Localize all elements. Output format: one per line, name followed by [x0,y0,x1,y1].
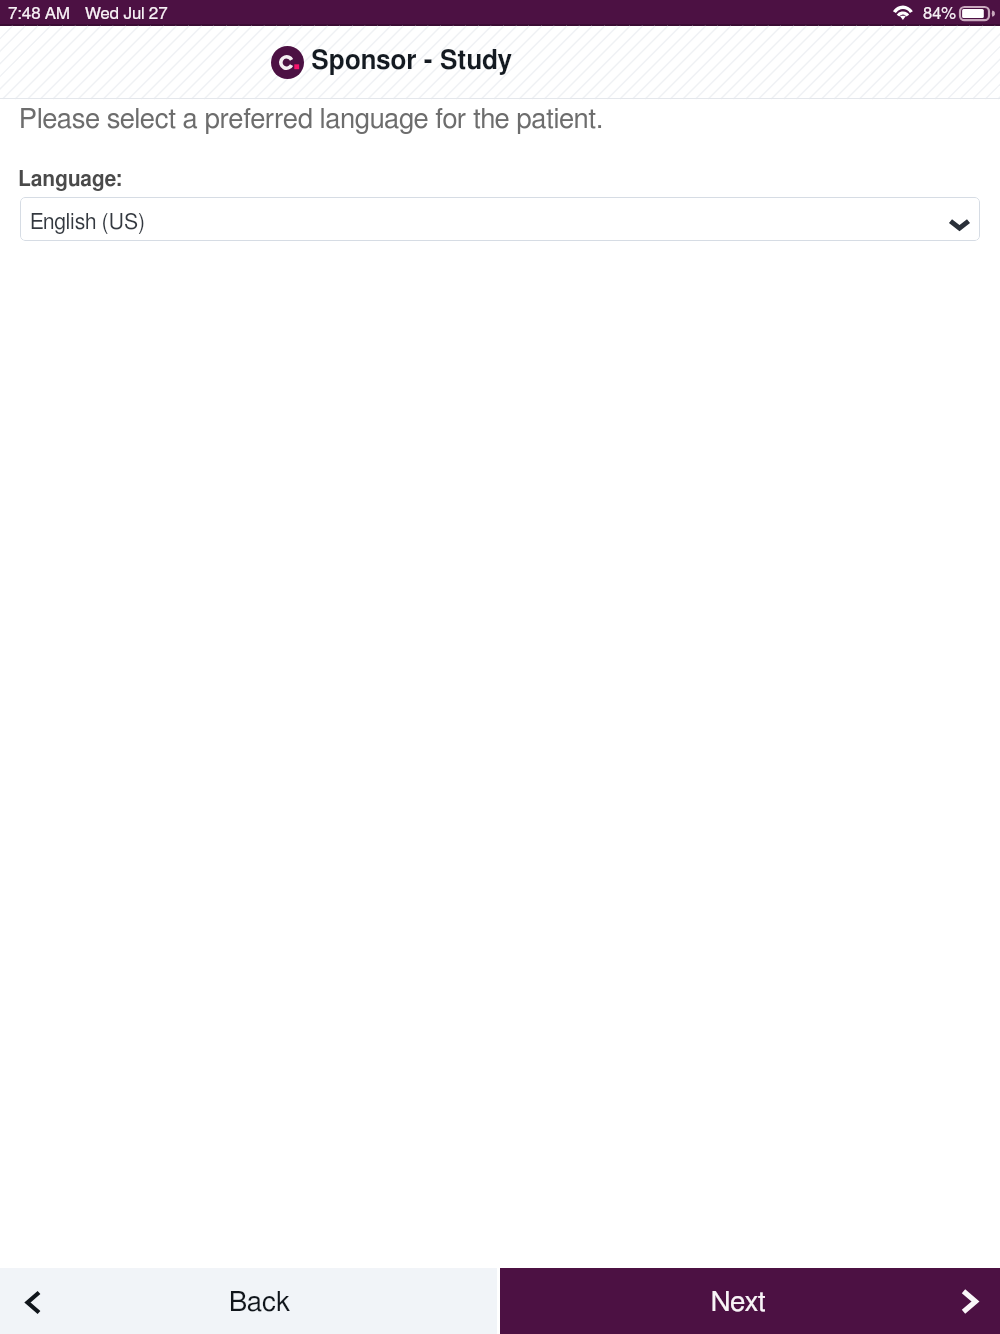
staticText: Language: [18,169,122,190]
other: Next [962,1289,977,1314]
button[interactable]: Back [0,1268,497,1334]
button[interactable]: English (US) [20,197,980,241]
staticText: Wed Jul 27 [85,5,168,22]
staticText: Back [11,1289,508,1317]
staticText: Next [488,1289,988,1317]
button[interactable]: Next [500,1268,1000,1334]
staticText: English (US) [30,212,146,233]
other: Back [26,1291,40,1314]
staticText: Please select a preferred language for t… [19,106,603,133]
staticText: 7:48 AM [8,5,71,22]
staticText: 84% [923,6,957,22]
staticText: Sponsor - Study [311,48,512,74]
